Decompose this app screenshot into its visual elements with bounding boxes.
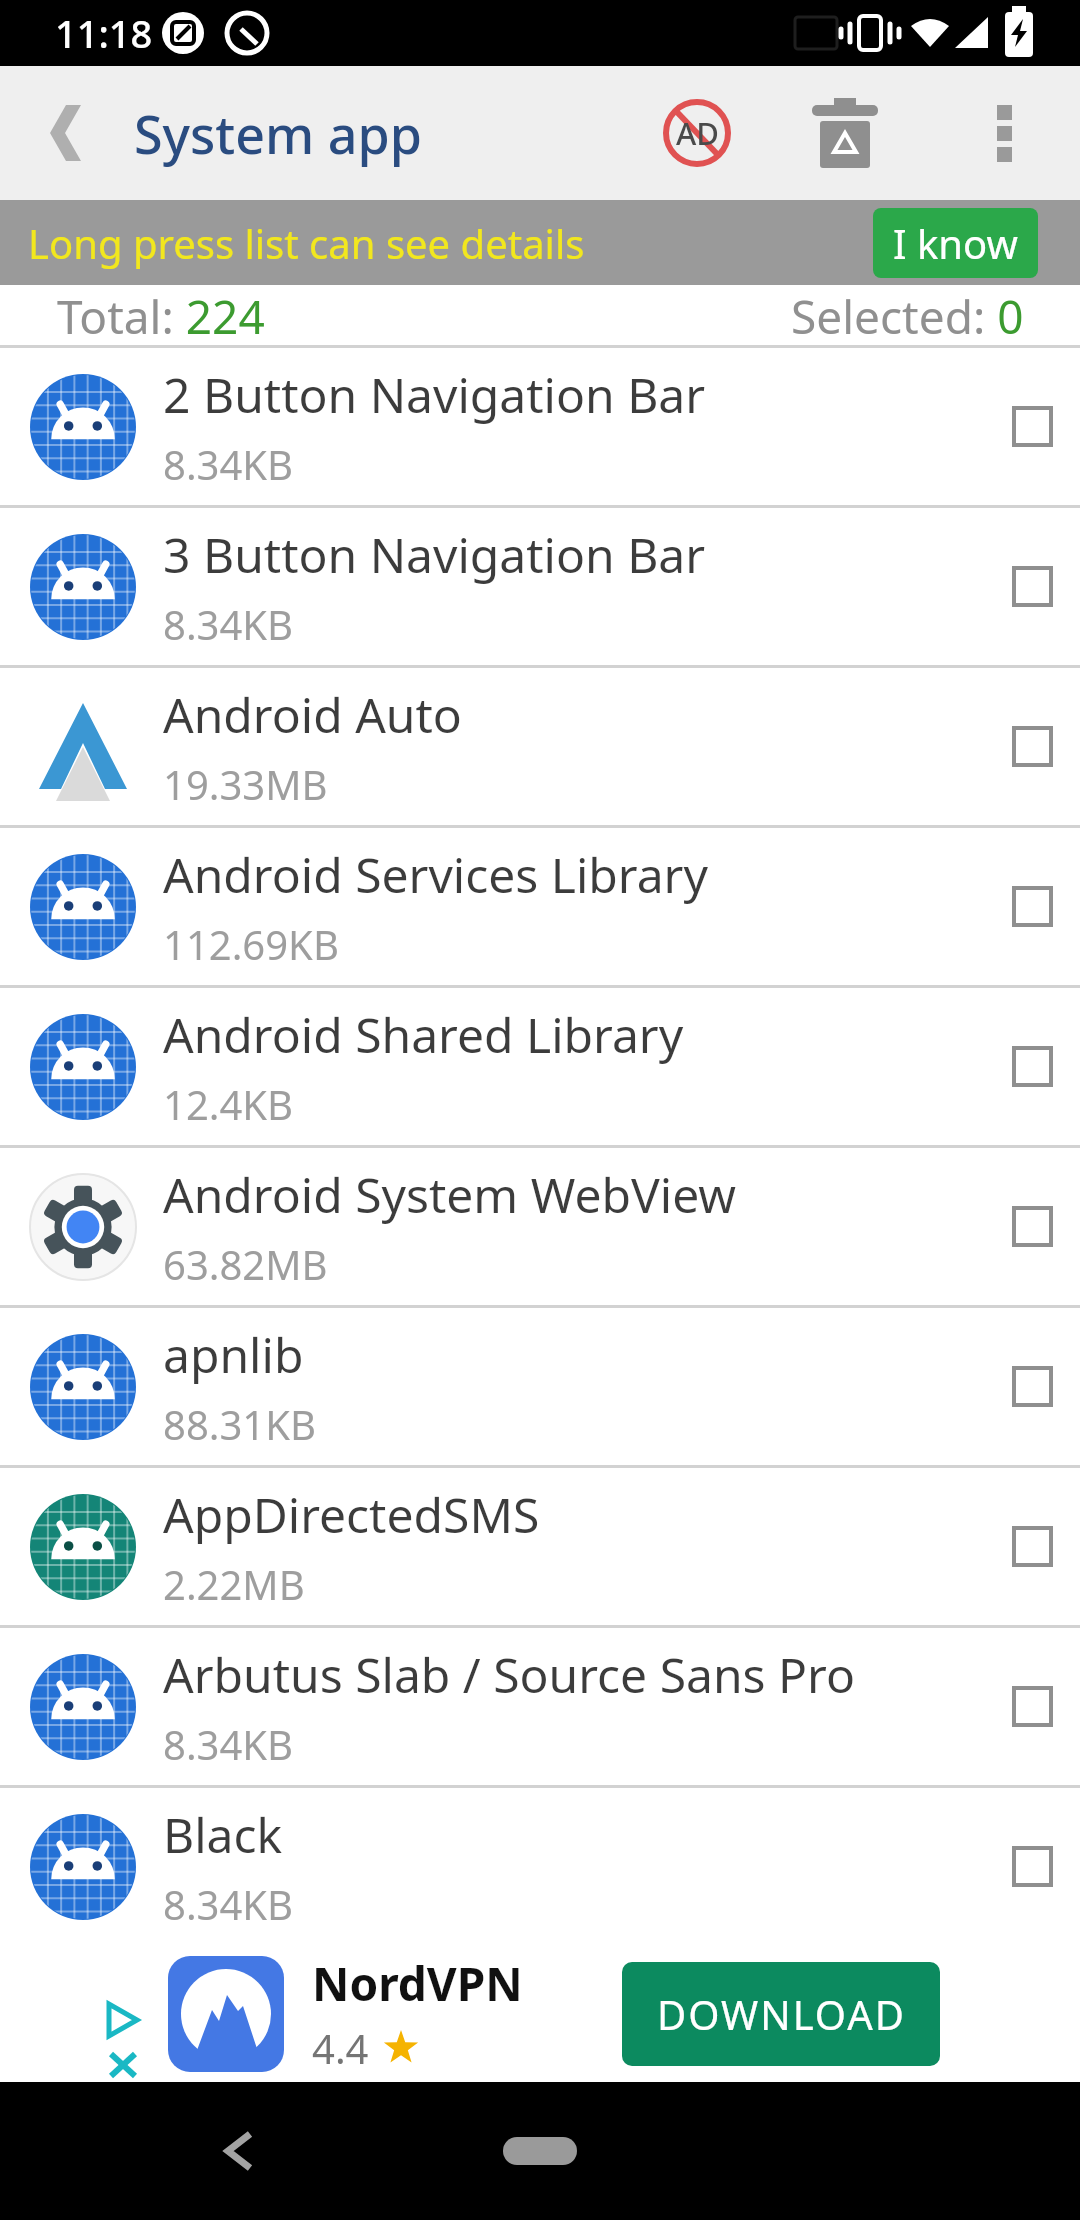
staticText: 8.34KB [163, 437, 294, 491]
button[interactable]: apnlib [0, 1305, 1080, 1465]
staticText: 4.4 [312, 2021, 369, 2075]
button[interactable]: Android Shared Library [0, 985, 1080, 1145]
staticText: 11:18 [55, 7, 153, 59]
staticText: Black [163, 1802, 283, 1867]
staticText: 3 Button Navigation Bar [163, 522, 706, 587]
button[interactable]: 2 Button Navigation Bar [0, 345, 1080, 505]
button[interactable] [810, 98, 880, 168]
button[interactable] [503, 2137, 577, 2165]
staticText: System app [134, 98, 423, 169]
staticText: Total: 224 [57, 285, 265, 345]
button[interactable]: Android Auto [0, 665, 1080, 825]
staticText: 2 Button Navigation Bar [163, 362, 706, 427]
staticText: DOWNLOAD [657, 1987, 906, 2041]
staticText: 63.82MB [163, 1237, 328, 1291]
button[interactable] [975, 103, 1035, 163]
staticText: I know [893, 216, 1018, 270]
button[interactable]: Black [0, 1785, 1080, 1945]
button[interactable]: Android System WebView [0, 1145, 1080, 1305]
button[interactable]: 3 Button Navigation Bar [0, 505, 1080, 665]
staticText: Long press list can see details [28, 216, 585, 270]
staticText: 12.4KB [163, 1077, 294, 1131]
staticText: NordVPN [312, 1952, 523, 2015]
staticText: Android Services Library [163, 842, 708, 907]
staticText: 2.22MB [163, 1557, 305, 1611]
staticText: 88.31KB [163, 1397, 316, 1451]
staticText: 19.33MB [163, 757, 328, 811]
staticText: apnlib [163, 1322, 304, 1387]
staticText: Selected: 0 [791, 285, 1024, 345]
button[interactable]: Arbutus Slab / Source Sans Pro [0, 1625, 1080, 1785]
button[interactable] [210, 2123, 266, 2179]
staticText: 8.34KB [163, 1717, 294, 1771]
button[interactable]: DOWNLOAD [622, 1962, 940, 2066]
staticText: AD [676, 112, 719, 154]
button[interactable]: AD [663, 99, 731, 167]
button[interactable]: Android Services Library [0, 825, 1080, 985]
staticText: Android Shared Library [163, 1002, 684, 1067]
staticText: 8.34KB [163, 1877, 294, 1931]
staticText: 8.34KB [163, 597, 294, 651]
staticText: Android Auto [163, 682, 462, 747]
button[interactable]: I know [873, 208, 1038, 278]
staticText: Android System WebView [163, 1162, 737, 1227]
button[interactable]: AppDirectedSMS [0, 1465, 1080, 1625]
staticText: 112.69KB [163, 917, 339, 971]
button[interactable] [36, 103, 96, 163]
staticText: AppDirectedSMS [163, 1482, 540, 1547]
staticText: Arbutus Slab / Source Sans Pro [163, 1642, 856, 1707]
